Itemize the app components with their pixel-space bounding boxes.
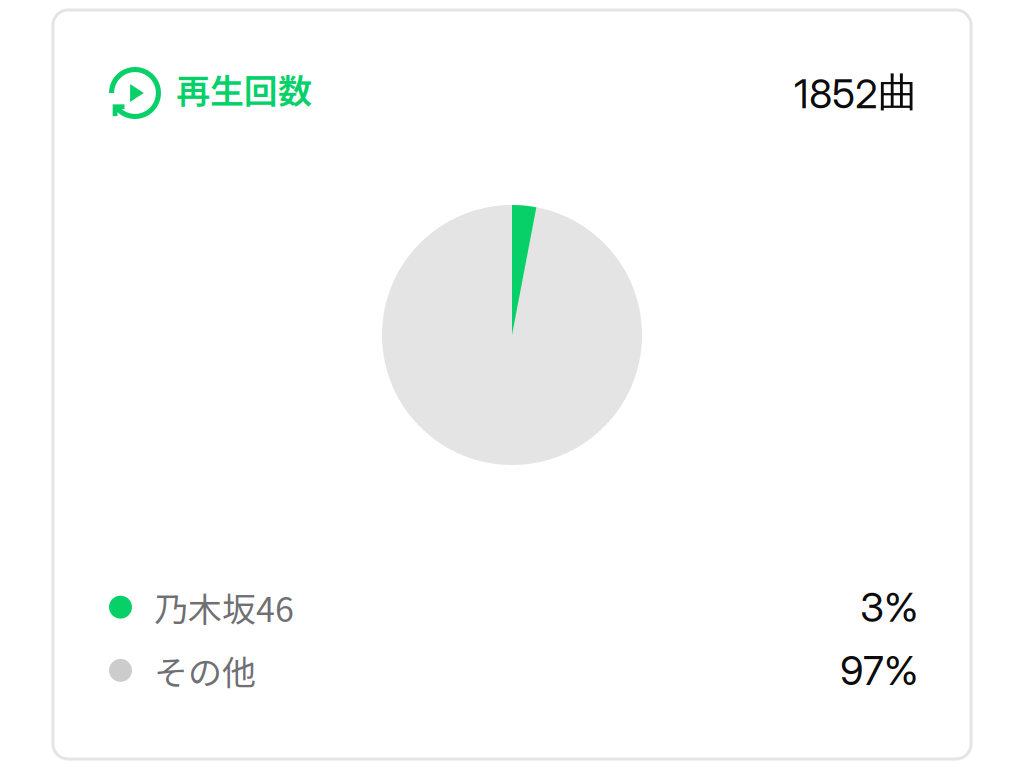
staticText: 1852曲 — [794, 68, 918, 118]
staticText: 乃木坂46 — [154, 582, 294, 632]
staticText: 97% — [840, 646, 918, 695]
staticText: 3% — [860, 583, 918, 631]
staticText: その他 — [154, 646, 256, 695]
staticText: 再生回数 — [176, 64, 312, 114]
button[interactable]: 再生回数 1852曲 — [53, 10, 971, 759]
